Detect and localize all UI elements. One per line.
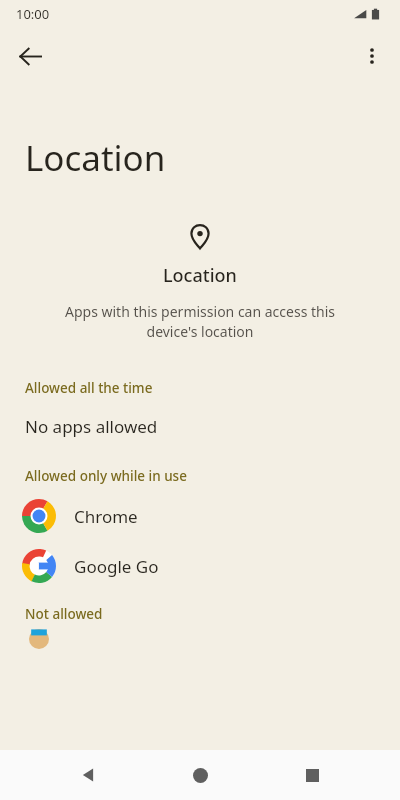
staticText: 10:00	[16, 5, 50, 23]
staticText: Apps with this permission can access thi…	[48, 302, 352, 341]
staticText: Google Go	[74, 555, 159, 578]
button[interactable]: Back	[6, 32, 54, 80]
button[interactable]: More options	[348, 32, 396, 80]
button[interactable]: Back	[64, 751, 112, 799]
staticText: Chrome	[74, 505, 138, 528]
staticText: Allowed all the time	[25, 379, 153, 397]
button[interactable]	[0, 629, 400, 649]
button[interactable]: Chrome	[0, 491, 400, 541]
staticText: Location	[25, 134, 166, 182]
staticText: Location	[163, 263, 237, 288]
staticText: Not allowed	[25, 605, 103, 623]
staticText: Allowed only while in use	[25, 467, 187, 485]
staticText: No apps allowed	[25, 415, 158, 438]
button[interactable]: Recent apps	[288, 751, 336, 799]
button[interactable]: Google Go	[0, 541, 400, 591]
button[interactable]: Home	[176, 751, 224, 799]
button[interactable]: No apps allowed	[0, 403, 400, 449]
